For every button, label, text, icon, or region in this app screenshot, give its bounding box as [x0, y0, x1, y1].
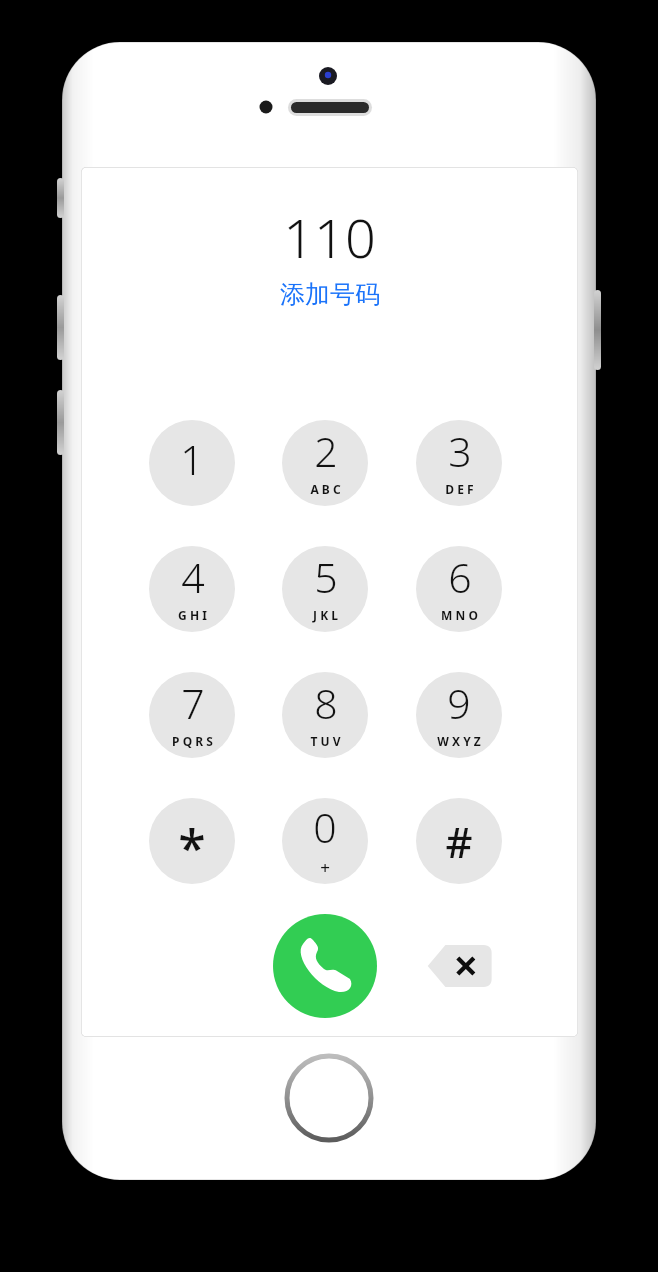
staticText: 3: [448, 423, 472, 479]
staticText: P Q R S: [172, 733, 213, 749]
staticText: 0: [313, 799, 337, 855]
button[interactable]: 9: [416, 672, 502, 758]
staticText: 9: [447, 675, 471, 731]
staticText: 8: [314, 675, 338, 731]
button[interactable]: 8: [282, 672, 368, 758]
staticText: A B C: [310, 481, 341, 497]
staticText: 110: [283, 200, 376, 274]
button[interactable]: #: [416, 798, 502, 884]
button[interactable]: Delete: [425, 941, 493, 991]
staticText: #: [445, 813, 473, 870]
staticText: 6: [448, 549, 472, 605]
button[interactable]: 3: [416, 420, 502, 506]
button[interactable]: 添加号码: [270, 275, 390, 314]
button[interactable]: Call: [273, 914, 377, 1018]
staticText: 2: [314, 423, 338, 479]
staticText: 4: [181, 549, 205, 605]
button[interactable]: 1: [149, 420, 235, 506]
staticText: T U V: [310, 733, 341, 749]
button[interactable]: 6: [416, 546, 502, 632]
button[interactable]: 2: [282, 420, 368, 506]
button[interactable]: 5: [282, 546, 368, 632]
staticText: W X Y Z: [437, 733, 481, 749]
staticText: 7: [181, 675, 205, 731]
staticText: *: [178, 813, 206, 881]
staticText: M N O: [441, 607, 478, 623]
staticText: 5: [314, 549, 338, 605]
button[interactable]: 4: [149, 546, 235, 632]
staticText: G H I: [178, 607, 207, 623]
button[interactable]: *: [149, 798, 235, 884]
button[interactable]: 7: [149, 672, 235, 758]
staticText: J K L: [313, 607, 338, 623]
staticText: D E F: [445, 481, 474, 497]
staticText: +: [320, 856, 330, 879]
staticText: 1: [180, 431, 204, 487]
staticText: 添加号码: [280, 279, 380, 310]
button[interactable]: 0: [282, 798, 368, 884]
